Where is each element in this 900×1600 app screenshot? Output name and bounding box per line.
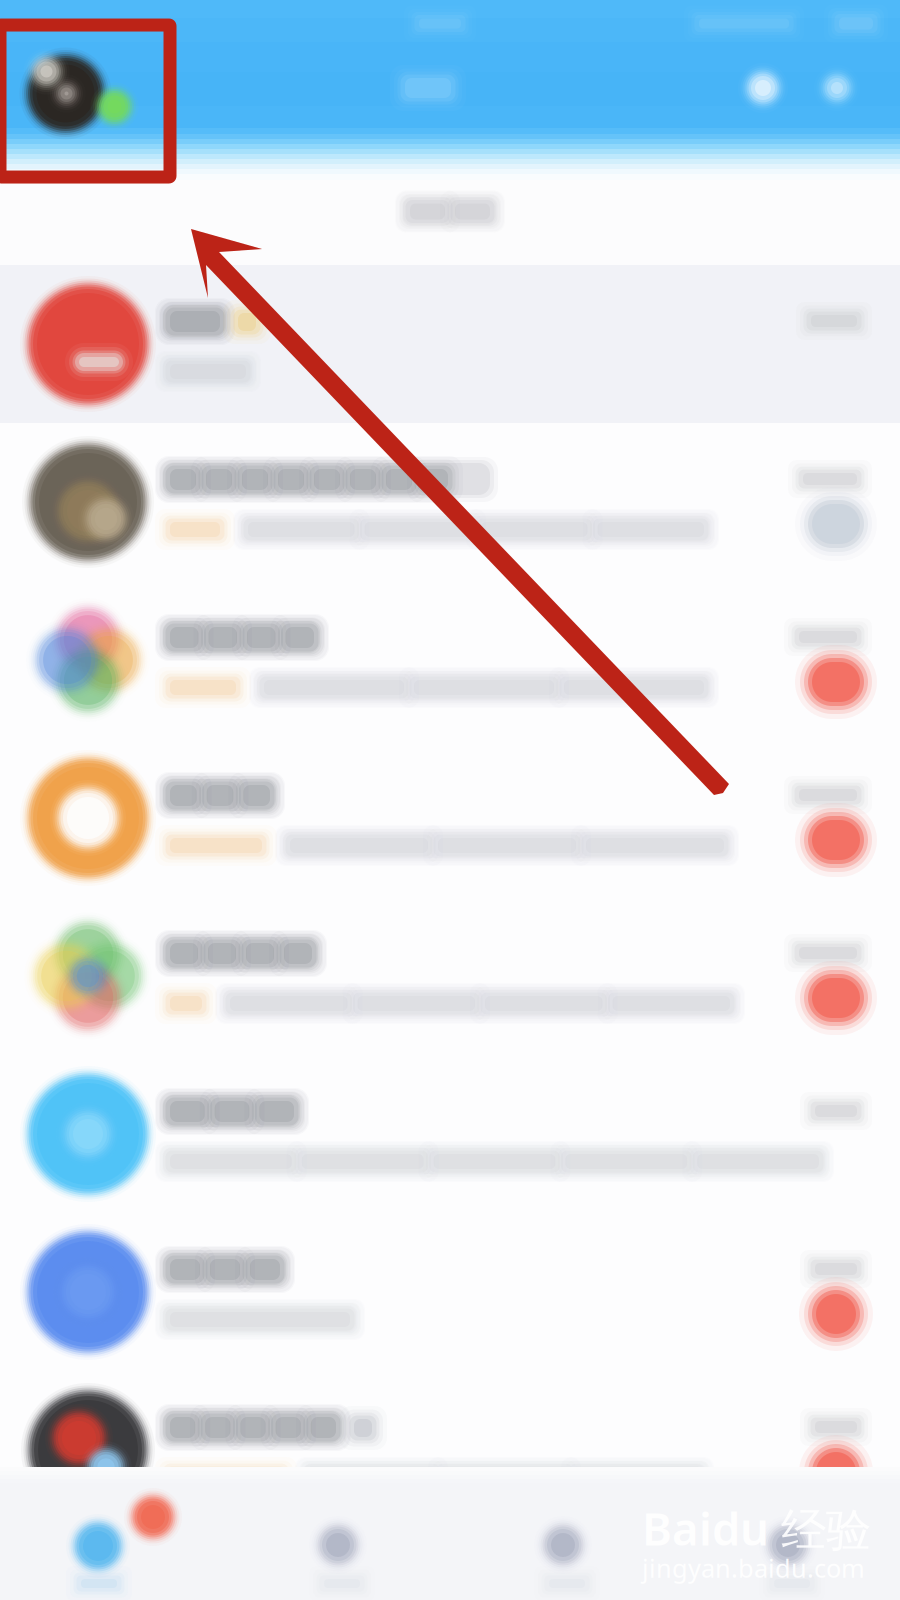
staticText: Baidu 经验 (642, 1498, 871, 1558)
button[interactable]: Discover (450, 1467, 675, 1600)
button[interactable]: Me (675, 1467, 900, 1600)
button[interactable] (0, 739, 900, 897)
button[interactable] (0, 581, 900, 739)
button[interactable] (0, 265, 900, 423)
button[interactable]: Search (0, 180, 900, 265)
button[interactable]: Search (800, 51, 900, 125)
button[interactable]: Add friend (726, 51, 800, 125)
button[interactable] (0, 897, 900, 1055)
button[interactable] (0, 1371, 900, 1529)
button[interactable] (0, 1213, 900, 1371)
button[interactable] (0, 423, 900, 581)
button[interactable]: Contacts (225, 1467, 450, 1600)
staticText: jingyan.baidu.com (642, 1551, 865, 1585)
button[interactable]: Messages (0, 1467, 225, 1600)
button[interactable] (0, 1055, 900, 1213)
button[interactable]: My profile (0, 40, 130, 136)
